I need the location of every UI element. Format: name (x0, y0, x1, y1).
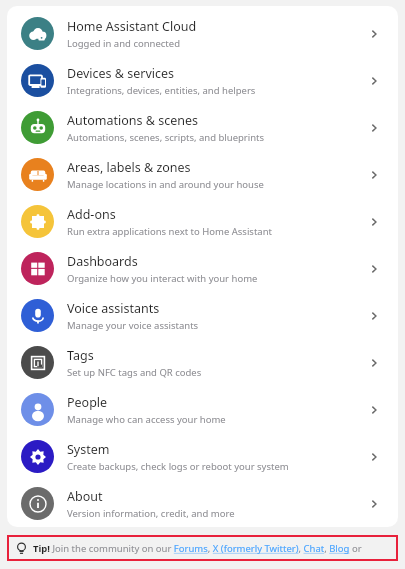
staticText: Tags (67, 347, 94, 364)
other: Open About (362, 492, 386, 516)
staticText: Dashboards (67, 253, 138, 270)
staticText: Voice assistants (67, 300, 160, 317)
button[interactable]: People (7, 386, 398, 433)
staticText: Manage your voice assistants (67, 319, 199, 332)
button[interactable]: Voice assistants (7, 292, 398, 339)
button[interactable]: Areas, labels & zones (7, 151, 398, 198)
button[interactable]: About (7, 480, 398, 527)
staticText: Version information, credit, and more (67, 507, 235, 520)
staticText: Add-ons (67, 206, 116, 223)
button[interactable]: Automations & scenes (7, 104, 398, 151)
staticText: Organize how you interact with your home (67, 272, 258, 285)
staticText: Manage locations in and around your hous… (67, 178, 264, 191)
button[interactable]: Tags (7, 339, 398, 386)
staticText: Run extra applications next to Home Assi… (67, 225, 272, 238)
other: Open Dashboards (362, 257, 386, 281)
other: Open Home Assistant Cloud (362, 22, 386, 46)
staticText: Automations, scenes, scripts, and bluepr… (67, 131, 265, 144)
staticText: Integrations, devices, entities, and hel… (67, 84, 256, 97)
other: Open Tags (362, 351, 386, 375)
other: Open Devices & services (362, 69, 386, 93)
staticText: Set up NFC tags and QR codes (67, 366, 202, 379)
button[interactable]: Dashboards (7, 245, 398, 292)
staticText: Tip! Join the community on our Forums, X… (33, 542, 398, 555)
staticText: Devices & services (67, 65, 175, 82)
staticText: Create backups, check logs or reboot you… (67, 460, 289, 473)
staticText: People (67, 394, 108, 411)
button[interactable]: Devices & services (7, 57, 398, 104)
staticText: Home Assistant Cloud (67, 18, 197, 35)
other: Open System (362, 445, 386, 469)
other: Open Voice assistants (362, 304, 386, 328)
other: Open Add-ons (362, 210, 386, 234)
staticText: About (67, 488, 103, 505)
staticText: System (67, 441, 110, 458)
button[interactable]: Tip! Join the community on our Forums, X… (7, 535, 398, 561)
staticText: Areas, labels & zones (67, 159, 191, 176)
button[interactable]: System (7, 433, 398, 480)
staticText: Logged in and connected (67, 37, 180, 50)
other: Open People (362, 398, 386, 422)
other: Open Areas, labels & zones (362, 163, 386, 187)
button[interactable]: Home Assistant Cloud (7, 10, 398, 57)
button[interactable]: Add-ons (7, 198, 398, 245)
other: Open Automations & scenes (362, 116, 386, 140)
staticText: Manage who can access your home (67, 413, 226, 426)
staticText: Automations & scenes (67, 112, 198, 129)
